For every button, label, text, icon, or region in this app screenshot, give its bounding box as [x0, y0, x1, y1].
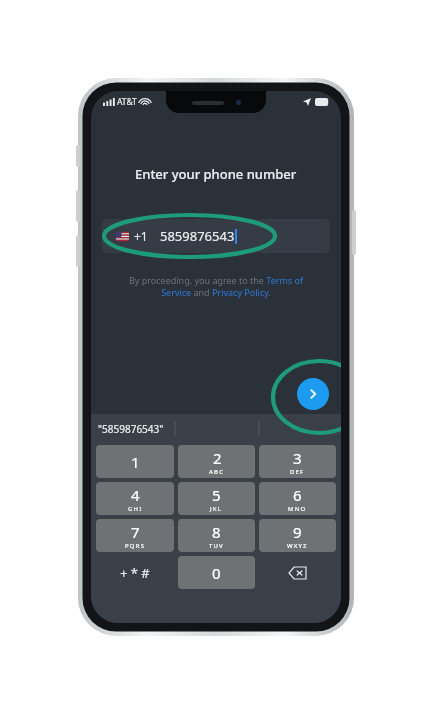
- staticText: 8: [212, 522, 221, 542]
- staticText: PQRS: [125, 542, 146, 550]
- staticText: GHI: [128, 505, 143, 513]
- button[interactable]: Next: [297, 378, 329, 410]
- staticText: "5859876543": [98, 422, 164, 436]
- staticText: 7: [131, 522, 140, 542]
- staticText: 0: [212, 563, 221, 583]
- button[interactable]: 3: [259, 445, 336, 478]
- staticText: Enter your phone number: [135, 165, 297, 183]
- button[interactable]: 1: [96, 445, 174, 478]
- button[interactable]: + * #: [94, 554, 176, 591]
- button[interactable]: Backspace: [257, 554, 338, 591]
- staticText: WXYZ: [287, 542, 308, 550]
- button[interactable]: +1: [102, 219, 330, 253]
- staticText: 9: [293, 522, 302, 542]
- staticText: 5: [212, 485, 221, 505]
- button[interactable]: 5: [178, 482, 255, 515]
- button[interactable]: 4: [96, 482, 174, 515]
- staticText: MNO: [288, 505, 307, 513]
- staticText: +1: [134, 228, 148, 244]
- button[interactable]: 8: [178, 519, 255, 552]
- button[interactable]: 2: [178, 445, 255, 478]
- staticText: + * #: [120, 564, 150, 582]
- staticText: 5859876543: [160, 227, 235, 245]
- staticText: 3: [293, 448, 302, 468]
- staticText: 2: [213, 448, 222, 468]
- staticText: JKL: [210, 505, 223, 513]
- staticText: ABC: [209, 468, 225, 476]
- staticText: DEF: [290, 468, 305, 476]
- staticText: 6: [293, 485, 302, 505]
- button[interactable]: 9: [259, 519, 336, 552]
- staticText: 1: [131, 452, 140, 472]
- button[interactable]: 6: [259, 482, 336, 515]
- button[interactable]: 0: [178, 556, 255, 589]
- staticText: AT&T: [117, 96, 137, 108]
- staticText: TUV: [209, 542, 224, 550]
- staticText: By proceeding, you agree to the Terms of…: [113, 274, 319, 299]
- staticText: 4: [131, 485, 140, 505]
- button[interactable]: 7: [96, 519, 174, 552]
